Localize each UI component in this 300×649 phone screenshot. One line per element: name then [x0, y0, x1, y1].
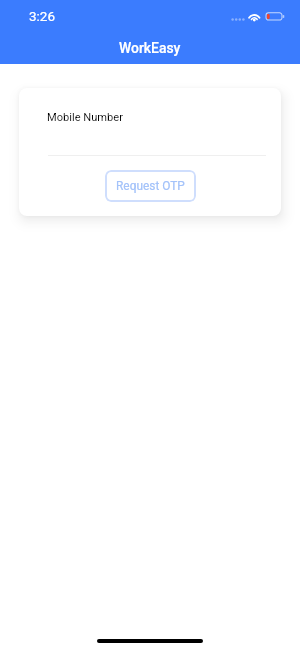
staticText: Mobile Number: [47, 111, 123, 124]
staticText: WorkEasy: [119, 40, 181, 56]
button[interactable]: Request OTP: [105, 170, 196, 202]
other: Signal, Wi-Fi and battery status: [0, 0, 300, 32]
staticText: 3:26: [29, 8, 56, 24]
staticText: Request OTP: [116, 179, 185, 193]
button[interactable]: Mobile Number: [19, 88, 281, 156]
